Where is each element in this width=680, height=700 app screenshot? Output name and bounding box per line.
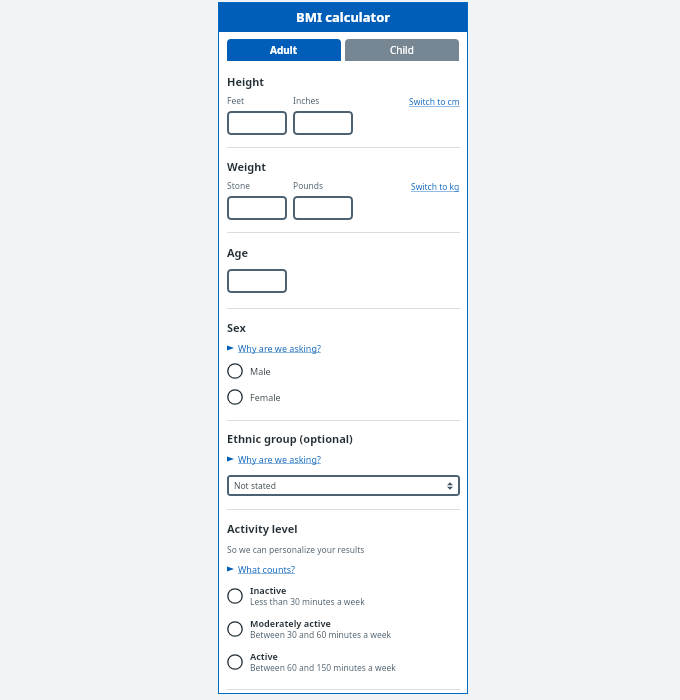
staticText: Why are we asking? [238,342,321,354]
staticText: What counts? [238,563,295,575]
button[interactable]: Child [345,39,459,61]
staticText: Active [250,650,278,662]
staticText: Why are we asking? [238,453,321,465]
button[interactable]: Switch to kg [411,181,460,193]
staticText: Child [390,43,414,57]
staticText: BMI calculator [296,8,391,26]
staticText: Ethnic group (optional) [227,431,353,446]
staticText: Sex [227,320,246,335]
button[interactable]: Adult [227,39,341,61]
staticText: Feet [227,95,245,107]
button[interactable]: Male [227,360,460,382]
staticText: Stone [227,180,250,192]
staticText: Inches [293,95,320,107]
staticText: So we can personalize your results [227,544,365,556]
staticText: Height [227,74,265,89]
staticText: Switch to cm [409,96,460,108]
button[interactable]: Active [227,647,460,677]
staticText: Switch to kg [411,181,460,193]
button[interactable] [293,196,353,220]
button[interactable] [227,111,287,135]
staticText: Adult [270,43,298,57]
staticText: Female [250,391,281,403]
button[interactable]: Not stated [227,475,460,496]
staticText: Between 30 and 60 minutes a week [250,629,392,641]
button[interactable]: Why are we asking? [227,342,321,354]
button[interactable] [227,269,287,293]
button[interactable]: Switch to cm [409,96,460,108]
button[interactable]: Why are we asking? [227,453,321,465]
button[interactable]: Inactive [227,581,460,611]
button[interactable] [227,196,287,220]
button[interactable]: Female [227,386,460,408]
button[interactable]: Moderately active [227,614,460,644]
staticText: Not stated [234,480,276,492]
button[interactable]: What counts? [227,563,295,575]
staticText: Weight [227,159,267,174]
button[interactable] [293,111,353,135]
staticText: Moderately active [250,617,331,629]
staticText: Male [250,365,271,377]
staticText: Between 60 and 150 minutes a week [250,662,396,674]
staticText: Less than 30 minutes a week [250,596,365,608]
staticText: Pounds [293,180,324,192]
staticText: Inactive [250,584,287,596]
staticText: Age [227,245,249,260]
staticText: Activity level [227,521,298,536]
